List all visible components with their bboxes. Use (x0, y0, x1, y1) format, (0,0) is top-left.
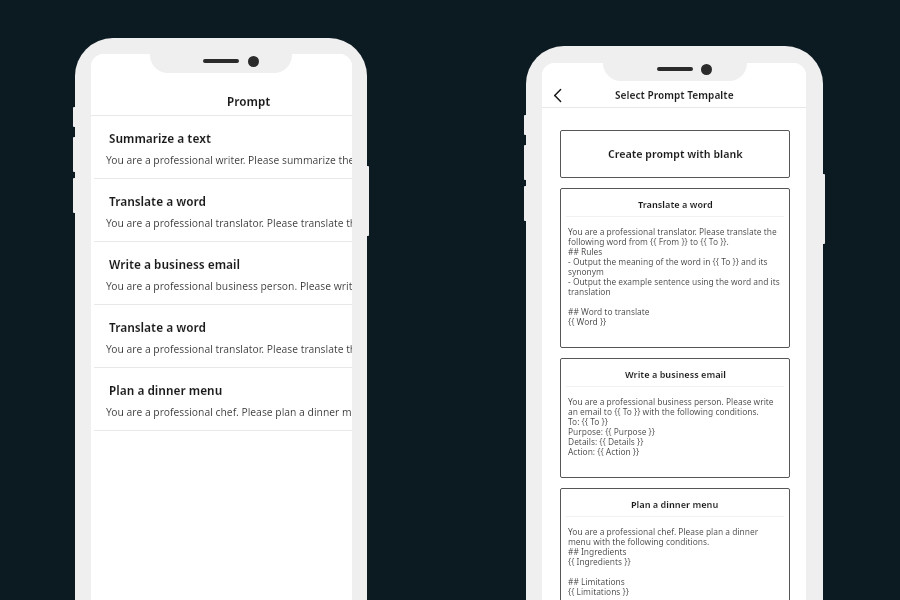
staticText: Write a business email (625, 368, 726, 380)
button[interactable]: Translate a word (91, 305, 352, 367)
button[interactable]: Summarize a text (91, 116, 352, 178)
staticText: You are a professional business person. … (106, 279, 352, 293)
staticText: Select Prompt Tempalte (615, 88, 734, 102)
staticText: You are a professional translator. Pleas… (106, 216, 352, 230)
button[interactable]: Plan a dinner menu (91, 368, 352, 430)
button[interactable]: Write a business email (560, 358, 790, 478)
staticText: Write a business email (109, 256, 241, 272)
staticText: You are a professional business person. … (568, 396, 782, 457)
staticText: You are a professional writer. Please su… (106, 153, 352, 167)
staticText: Translate a word (638, 198, 713, 210)
button[interactable]: Back (545, 81, 569, 105)
staticText: Create prompt with blank (608, 147, 743, 161)
button[interactable]: Plan a dinner menu (560, 488, 790, 600)
button[interactable]: Translate a word (560, 188, 790, 348)
staticText: Plan a dinner menu (631, 498, 719, 510)
staticText: You are a professional chef. Please plan… (568, 526, 782, 597)
staticText: You are a professional translator. Pleas… (106, 342, 352, 356)
button[interactable]: Write a business email (91, 242, 352, 304)
staticText: Translate a word (109, 193, 206, 209)
button[interactable]: Translate a word (91, 179, 352, 241)
button[interactable]: Create prompt with blank (560, 130, 790, 178)
staticText: Summarize a text (109, 130, 212, 146)
staticText: You are a professional translator. Pleas… (568, 226, 782, 327)
staticText: Plan a dinner menu (109, 382, 223, 398)
staticText: Translate a word (109, 319, 206, 335)
staticText: Prompt (227, 93, 271, 109)
staticText: You are a professional chef. Please plan… (106, 405, 352, 419)
